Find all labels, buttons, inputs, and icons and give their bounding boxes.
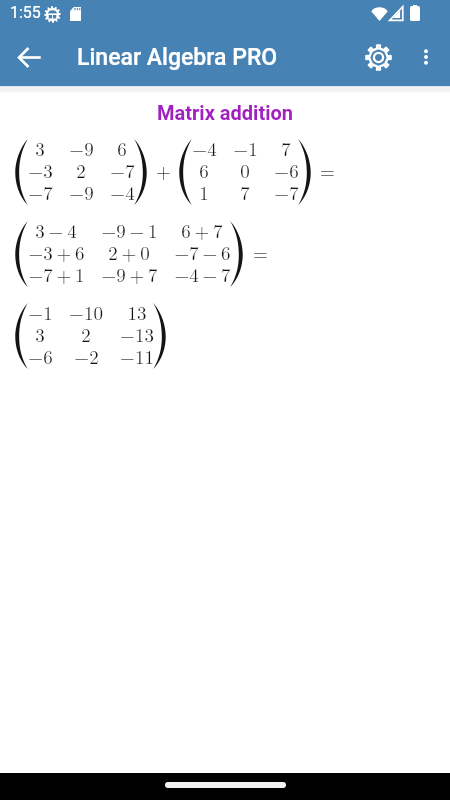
staticText: −7 − 6: [174, 239, 231, 266]
button[interactable]: Settings: [352, 31, 404, 83]
staticText: −9: [69, 179, 94, 206]
staticText: 3 − 4: [35, 217, 77, 244]
staticText: −7: [110, 157, 135, 184]
staticText: Linear Algebra PRO: [77, 44, 278, 71]
staticText: 1: [199, 179, 209, 206]
staticText: −13: [120, 321, 154, 348]
button[interactable]: Back: [0, 28, 58, 86]
staticText: −1: [28, 299, 53, 326]
staticText: 0: [240, 157, 250, 184]
staticText: −2: [74, 343, 99, 370]
staticText: −10: [69, 299, 103, 326]
staticText: −7 + 1: [28, 261, 85, 288]
staticText: 7: [281, 135, 291, 162]
staticText: −9 + 7: [101, 261, 158, 288]
staticText: −6: [28, 343, 53, 370]
button[interactable]: More options: [404, 35, 448, 79]
staticText: −3: [28, 157, 53, 184]
staticText: =: [253, 239, 268, 266]
staticText: −6: [274, 157, 299, 184]
staticText: −3 + 6: [28, 239, 85, 266]
staticText: 6 + 7: [181, 217, 223, 244]
staticText: 6: [199, 157, 209, 184]
staticText: 2: [76, 157, 86, 184]
staticText: −4: [110, 179, 135, 206]
button[interactable]: Home: [165, 782, 286, 788]
staticText: 1:55: [10, 3, 41, 22]
staticText: 3: [35, 321, 45, 348]
staticText: 2 + 0: [108, 239, 150, 266]
staticText: −9: [69, 135, 94, 162]
staticText: =: [320, 157, 335, 184]
staticText: −1: [233, 135, 258, 162]
staticText: 6: [117, 135, 127, 162]
staticText: 7: [240, 179, 250, 206]
staticText: Matrix addition: [157, 101, 293, 124]
staticText: −9 − 1: [101, 217, 158, 244]
staticText: 13: [127, 299, 147, 326]
staticText: 2: [81, 321, 91, 348]
staticText: 3: [35, 135, 45, 162]
staticText: −7: [28, 179, 53, 206]
staticText: −4: [192, 135, 217, 162]
staticText: +: [156, 157, 171, 184]
staticText: −7: [274, 179, 299, 206]
staticText: −11: [120, 343, 154, 370]
staticText: −4 − 7: [174, 261, 231, 288]
